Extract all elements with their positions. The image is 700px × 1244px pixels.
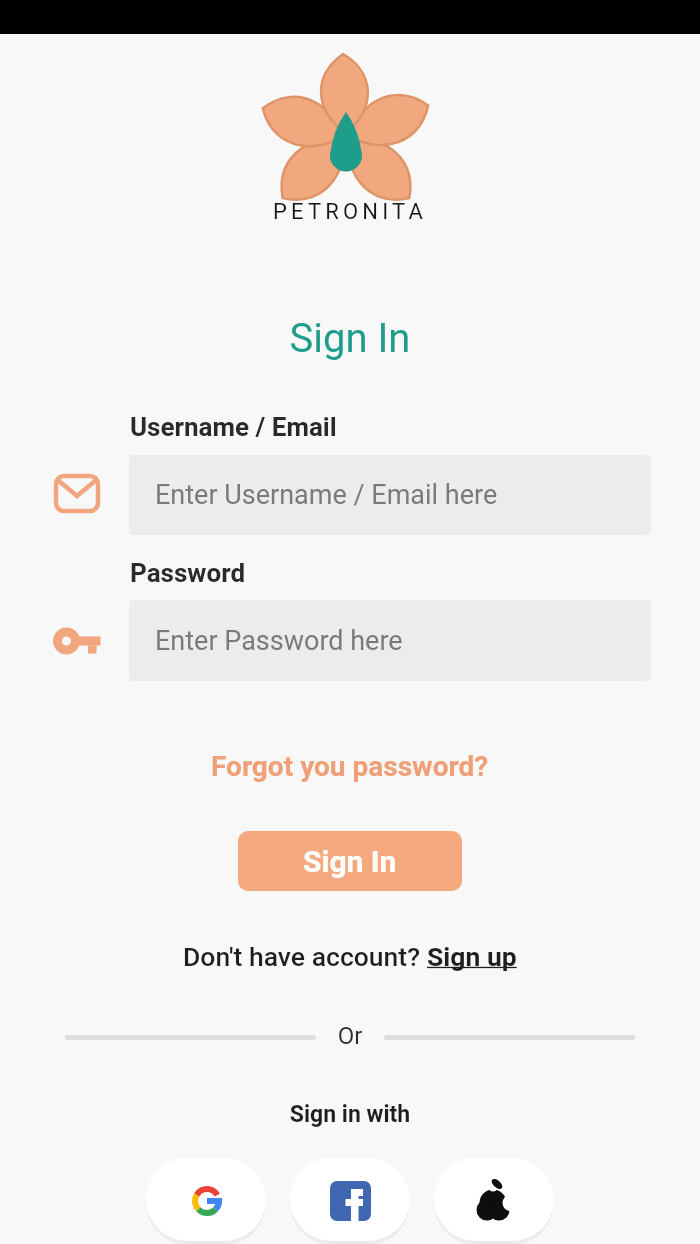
staticText: Or bbox=[0, 1022, 700, 1050]
button[interactable] bbox=[146, 1158, 266, 1241]
staticText: Username / Email bbox=[130, 412, 337, 442]
staticText: Sign In bbox=[303, 844, 397, 879]
button[interactable] bbox=[290, 1158, 410, 1241]
staticText: Enter Username / Email here bbox=[155, 479, 498, 511]
staticText: Don't have account? bbox=[183, 941, 427, 972]
button[interactable] bbox=[434, 1158, 554, 1241]
staticText: PETRONITA bbox=[0, 199, 700, 225]
staticText: Enter Password here bbox=[155, 625, 403, 657]
staticText: Sign In bbox=[0, 315, 700, 362]
button[interactable]: Enter Username / Email here bbox=[129, 455, 651, 535]
button[interactable]: Forgot you password? bbox=[211, 750, 489, 783]
button[interactable]: Sign up bbox=[427, 941, 517, 972]
staticText: Forgot you password? bbox=[211, 750, 489, 783]
button[interactable]: Sign In bbox=[238, 831, 462, 891]
button[interactable]: Enter Password here bbox=[129, 600, 651, 681]
staticText: Sign up bbox=[427, 941, 517, 972]
staticText: Sign in with bbox=[0, 1101, 700, 1128]
staticText: Password bbox=[130, 558, 246, 588]
